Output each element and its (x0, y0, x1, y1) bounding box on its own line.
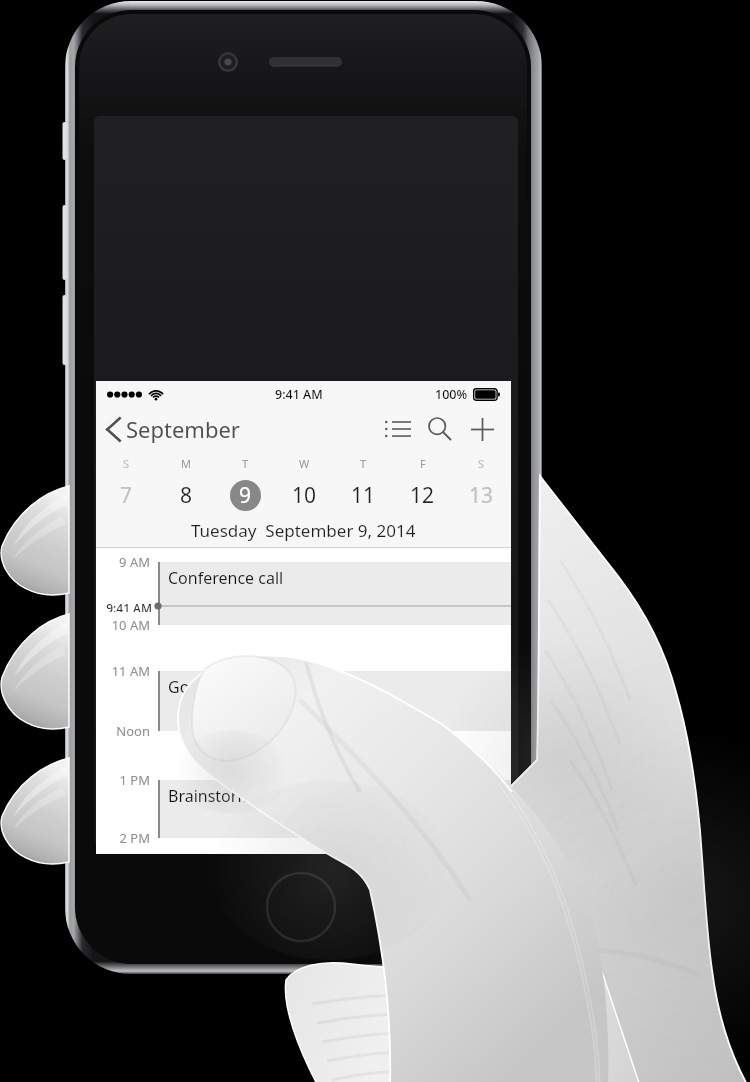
button[interactable]: List view (381, 412, 415, 446)
staticText: Conference call (168, 567, 284, 589)
button[interactable]: Search (423, 412, 457, 446)
staticText: 11 (351, 481, 376, 510)
staticText: 10 AM (96, 616, 150, 634)
staticText: 1 PM (96, 771, 150, 789)
staticText: 9:41 AM (96, 600, 152, 612)
staticText: Noon (96, 722, 150, 740)
button[interactable]: 7 (96, 476, 156, 514)
staticText: S (478, 456, 485, 471)
button[interactable]: 13 (452, 476, 511, 514)
staticText: 10 (292, 481, 317, 510)
staticText: 2 PM (96, 829, 150, 847)
button[interactable]: September (106, 410, 248, 448)
button[interactable]: Brainstorming session (158, 780, 511, 838)
staticText: September (126, 414, 240, 444)
staticText: 8 (180, 481, 193, 510)
staticText: F (420, 456, 426, 471)
button[interactable]: Conference call (158, 562, 511, 625)
staticText: 9 AM (96, 553, 150, 571)
staticText: W (299, 456, 310, 471)
staticText: T (242, 456, 249, 471)
staticText: 7 (120, 481, 133, 510)
staticText: 9:41 AM (275, 386, 323, 403)
button[interactable]: 12 (393, 476, 452, 514)
button[interactable]: Go for a run (158, 671, 511, 731)
button[interactable]: 8 (156, 476, 216, 514)
staticText: Brainstorming session (168, 785, 337, 807)
staticText: 12 (410, 481, 435, 510)
staticText: M (181, 456, 191, 471)
button[interactable]: 9 (216, 476, 275, 514)
button[interactable]: 11 (334, 476, 393, 514)
staticText: 9 (239, 481, 252, 510)
staticText: 100% (435, 386, 468, 403)
staticText: Tuesday September 9, 2014 (191, 519, 416, 542)
staticText: T (360, 456, 367, 471)
button[interactable]: Add event (465, 412, 499, 446)
staticText: 13 (469, 481, 494, 510)
staticText: S (123, 456, 130, 471)
staticText: 11 AM (96, 662, 150, 680)
button[interactable]: 10 (275, 476, 334, 514)
staticText: Go for a run (168, 676, 259, 698)
